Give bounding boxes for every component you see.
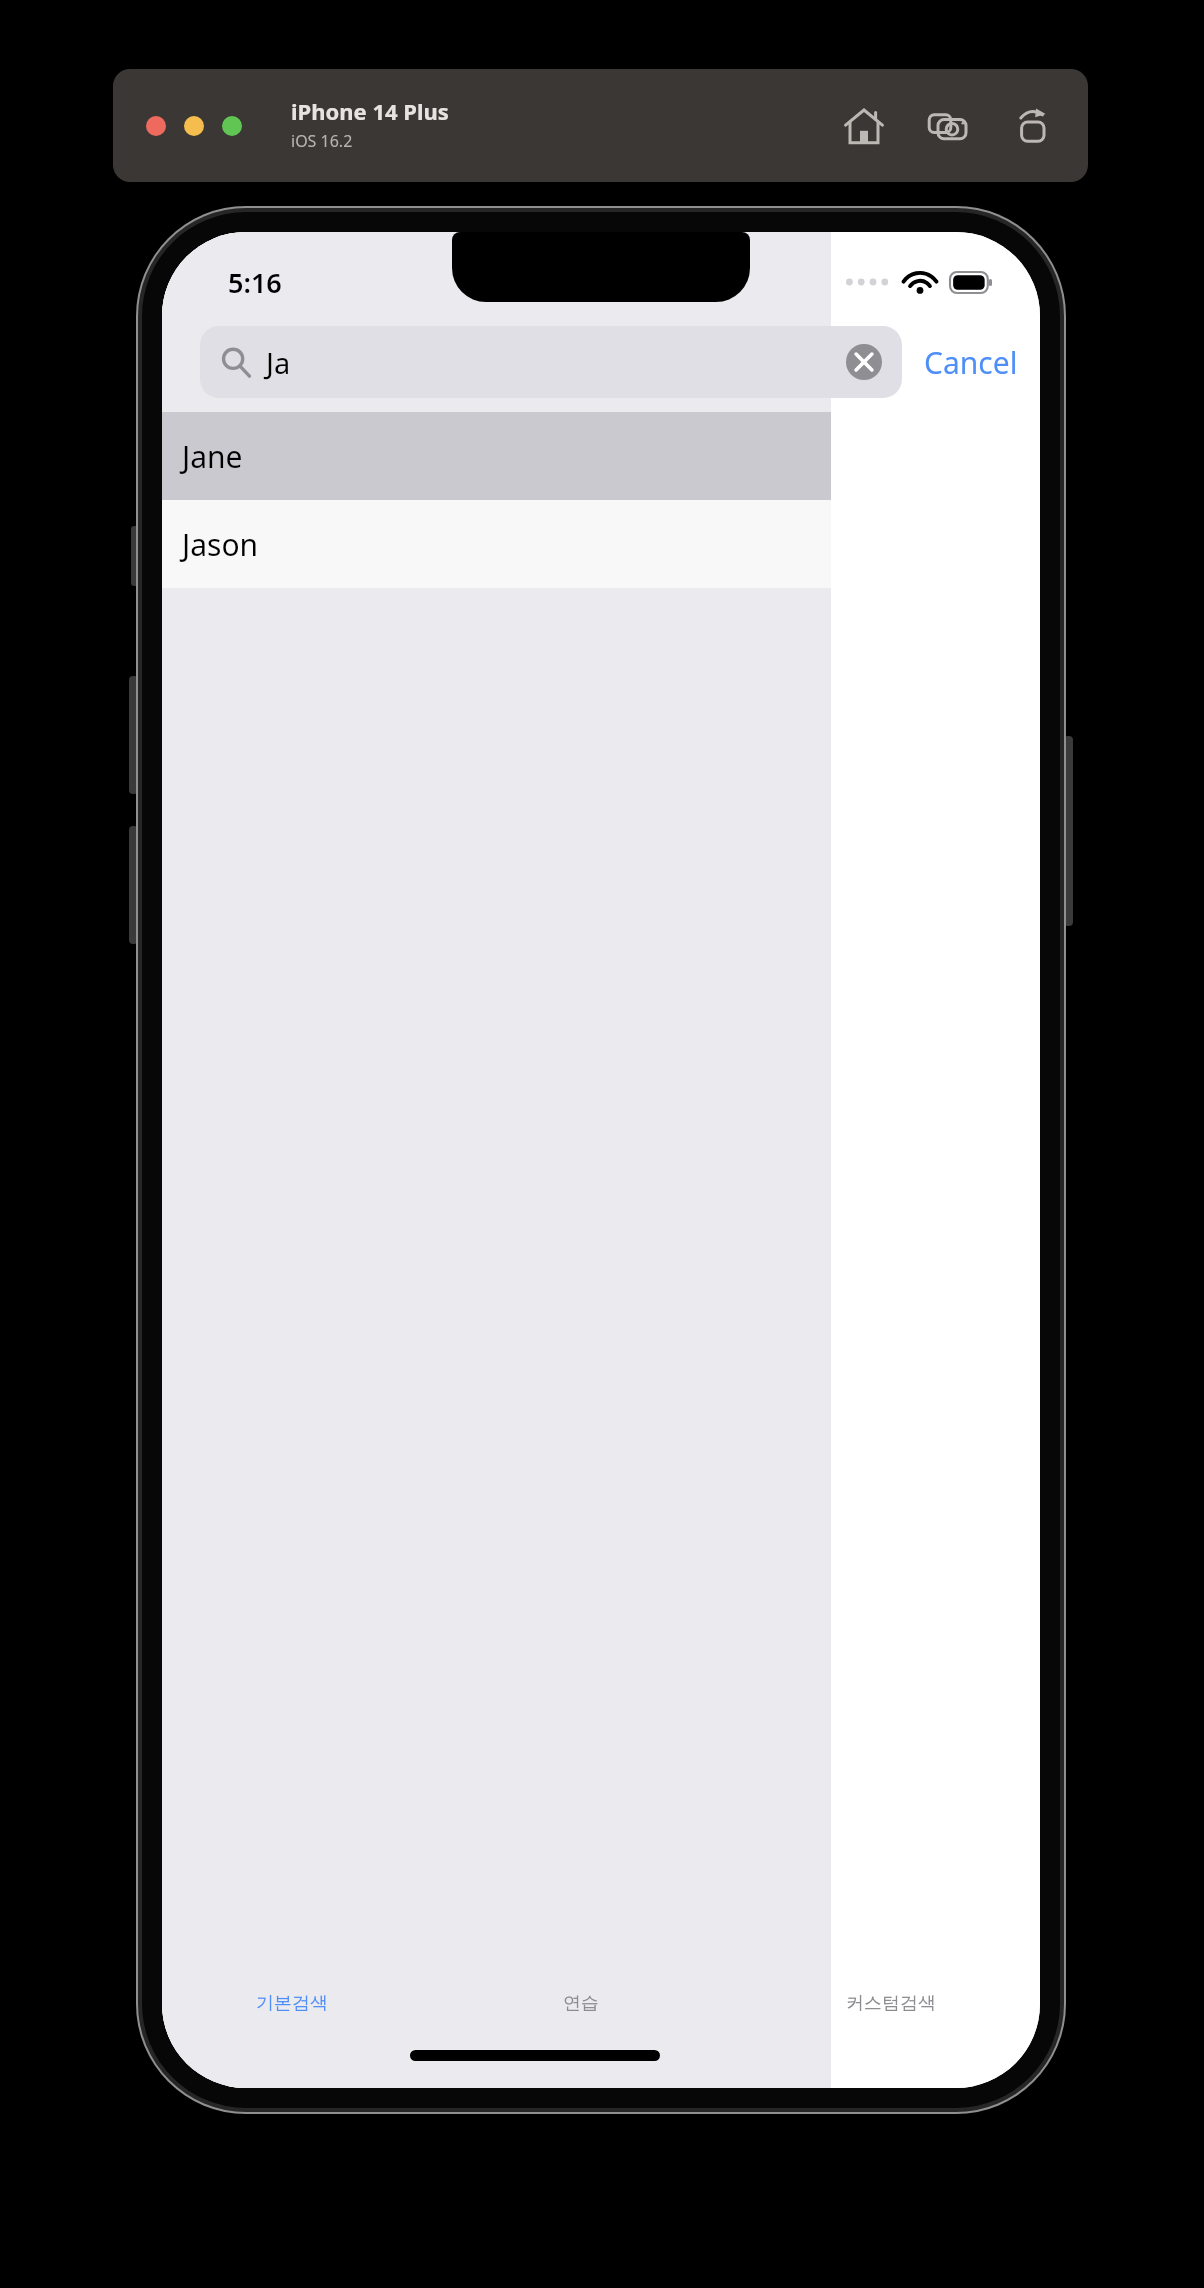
staticText: Jason bbox=[182, 524, 259, 565]
staticText: 기본검색 bbox=[256, 1992, 328, 2015]
staticText: 5:16 bbox=[228, 264, 282, 301]
button[interactable]: Home bbox=[836, 98, 892, 154]
button[interactable]: Cancel bbox=[902, 326, 1040, 398]
staticText: 커스텀검색 bbox=[846, 1992, 936, 2015]
button[interactable]: 기본검색 bbox=[162, 1974, 421, 2032]
staticText: Jane bbox=[182, 436, 243, 477]
staticText: Cancel bbox=[924, 342, 1018, 383]
button[interactable] bbox=[184, 116, 204, 136]
button[interactable] bbox=[222, 116, 242, 136]
staticText: Ja bbox=[266, 343, 291, 382]
staticText: 연습 bbox=[563, 1992, 599, 2015]
button[interactable]: Ja bbox=[200, 326, 902, 398]
button[interactable]: 연습 bbox=[421, 1974, 741, 2032]
button[interactable]: Clear text bbox=[846, 344, 882, 380]
button[interactable] bbox=[146, 116, 166, 136]
button[interactable]: Rotate bbox=[1004, 98, 1060, 154]
staticText: iOS 16.2 bbox=[291, 130, 353, 152]
button[interactable]: Jane bbox=[162, 412, 831, 500]
button[interactable]: Jason bbox=[162, 500, 831, 588]
staticText: iPhone 14 Plus bbox=[291, 96, 449, 126]
button[interactable]: 커스텀검색 bbox=[741, 1974, 1040, 2032]
button[interactable]: Screenshot bbox=[920, 98, 976, 154]
